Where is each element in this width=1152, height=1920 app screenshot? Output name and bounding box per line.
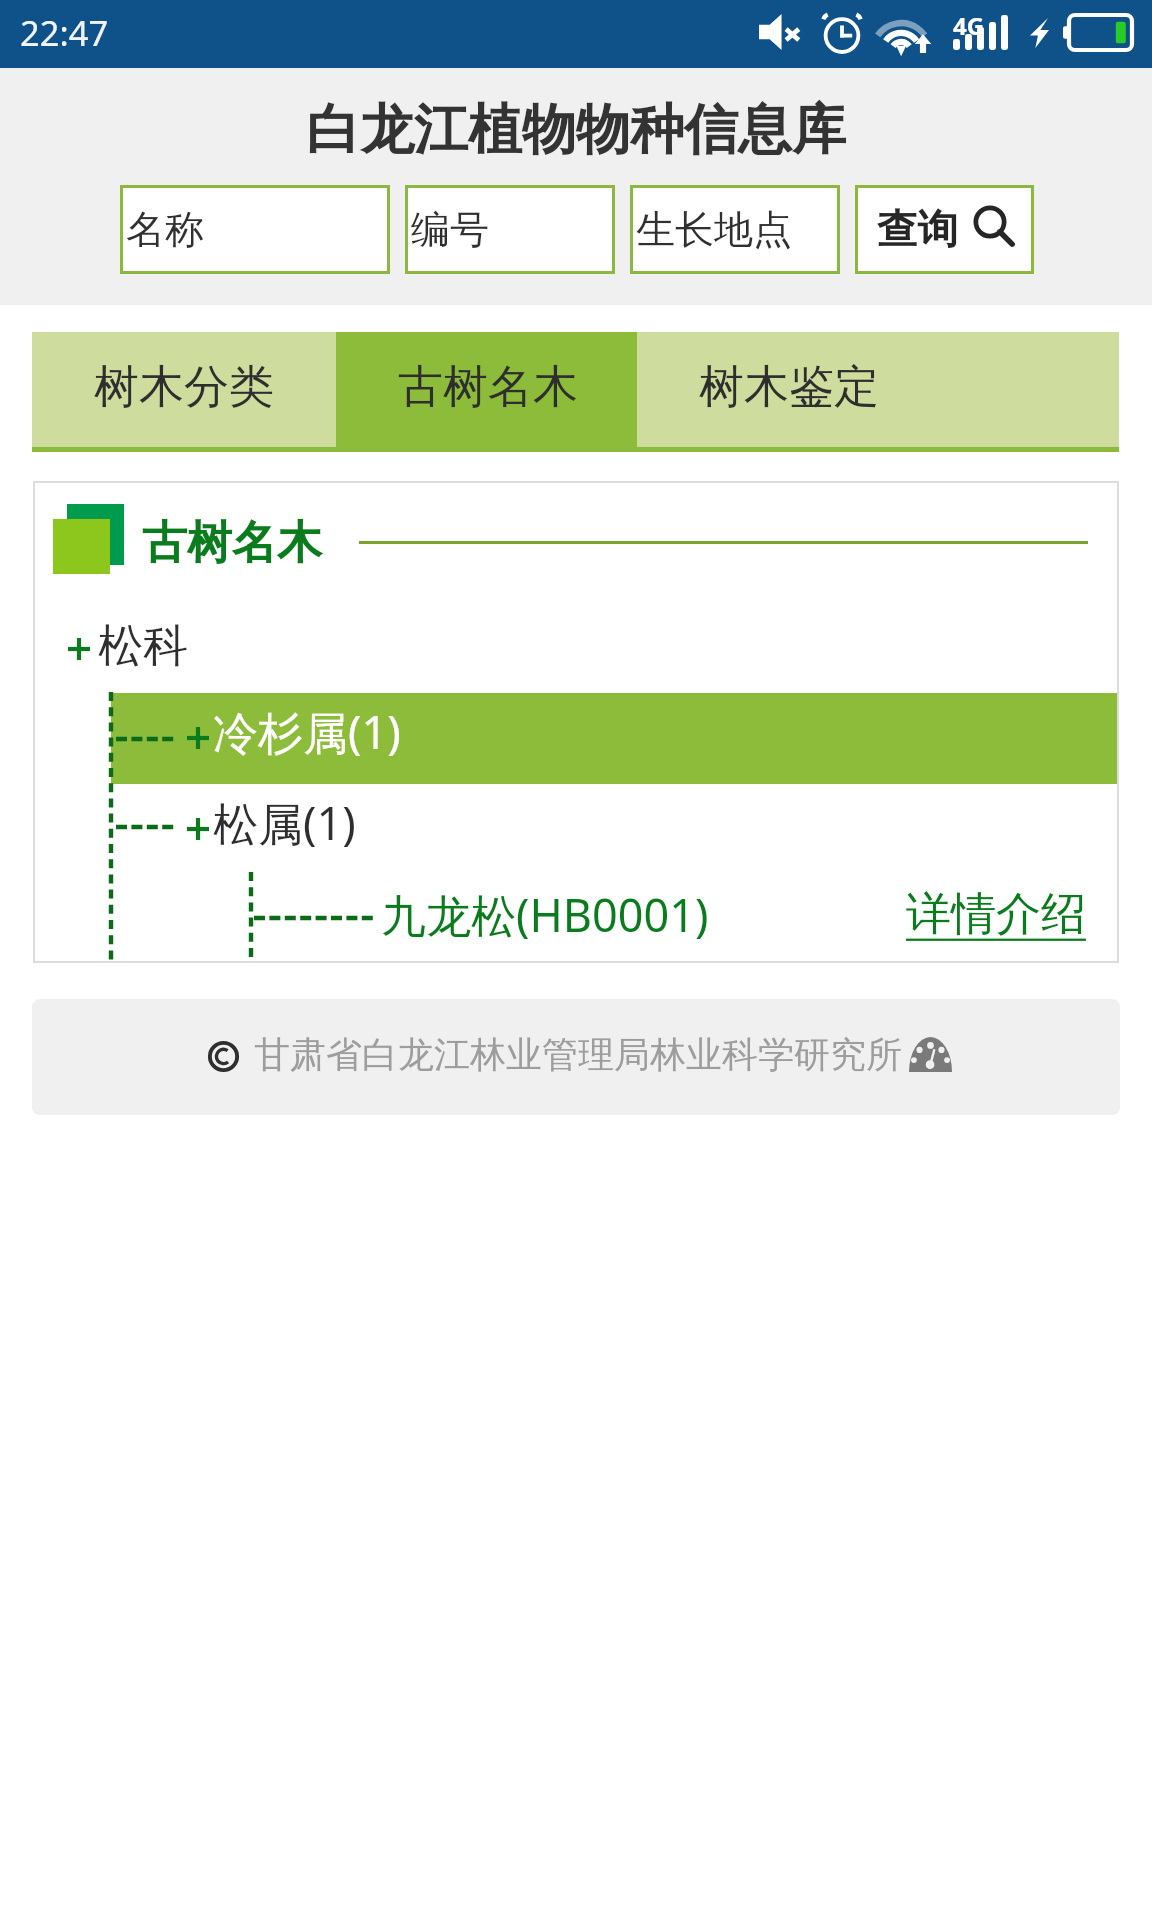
staticText: 22:47 [20,9,109,56]
button[interactable]: 松科 [36,605,1116,671]
staticText: 编号 [411,205,489,254]
staticText: 甘肃省白龙江林业管理局林业科学研究所 [254,1032,902,1077]
staticText: 树木分类 [94,359,274,416]
staticText: 生长地点 [636,205,792,254]
button[interactable]: 树木鉴定 [637,332,1119,447]
button[interactable]: 详情介绍 [899,876,1099,956]
button[interactable]: 编号 [405,185,615,274]
staticText: 4G [953,9,985,42]
button[interactable]: 查询 [855,185,1034,274]
staticText: 名称 [126,205,204,254]
button[interactable]: 九龙松(HB0001) [251,869,891,963]
staticText: 松科 [98,618,188,675]
staticText: 古树名木 [142,515,322,572]
button[interactable]: 树木分类 [32,332,336,447]
staticText: 树木鉴定 [699,359,879,416]
other: Mobile signal 4G [953,12,1008,50]
button[interactable]: 松属(1) [111,784,1117,869]
staticText: 详情介绍 [906,886,1086,943]
button[interactable]: 名称 [120,185,390,274]
staticText: 白龙江植物物种信息库 [0,96,1152,164]
other: Charging [1030,18,1049,48]
staticText: 冷杉属(1) [213,701,401,762]
staticText: 松属(1) [213,792,356,853]
staticText: 九龙松(HB0001) [381,884,709,945]
other: Statistics [909,1037,952,1072]
other: Alarm [822,13,862,52]
staticText: 查询 [877,204,958,255]
other: Battery [1063,15,1132,50]
button[interactable]: 生长地点 [630,185,840,274]
staticText: 古树名木 [398,359,578,416]
other: Sound off [759,14,800,50]
button[interactable]: 冷杉属(1) [111,693,1117,784]
button[interactable]: 古树名木 [336,332,637,447]
other: Wi-Fi [884,12,931,53]
